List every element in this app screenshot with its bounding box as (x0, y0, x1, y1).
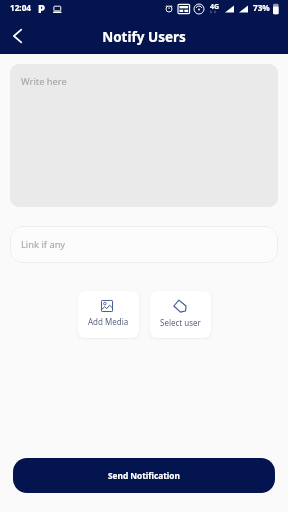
button[interactable]: Link if any (10, 226, 278, 263)
staticText: Select user (160, 317, 201, 328)
button[interactable]: Select user (150, 291, 211, 338)
button[interactable]: Back (5, 24, 29, 48)
staticText: Notify Users (102, 28, 186, 46)
staticText: P (38, 1, 45, 16)
staticText: 12:04 (10, 2, 32, 13)
staticText: Send Notification (108, 470, 180, 481)
staticText: Add Media (88, 316, 129, 327)
staticText: Write here (21, 75, 67, 88)
button[interactable]: Add Media (78, 291, 139, 338)
staticText: 4G (210, 2, 220, 12)
button[interactable]: Send Notification (13, 458, 275, 493)
staticText: Link if any (21, 238, 66, 251)
staticText: 73% (253, 2, 270, 13)
